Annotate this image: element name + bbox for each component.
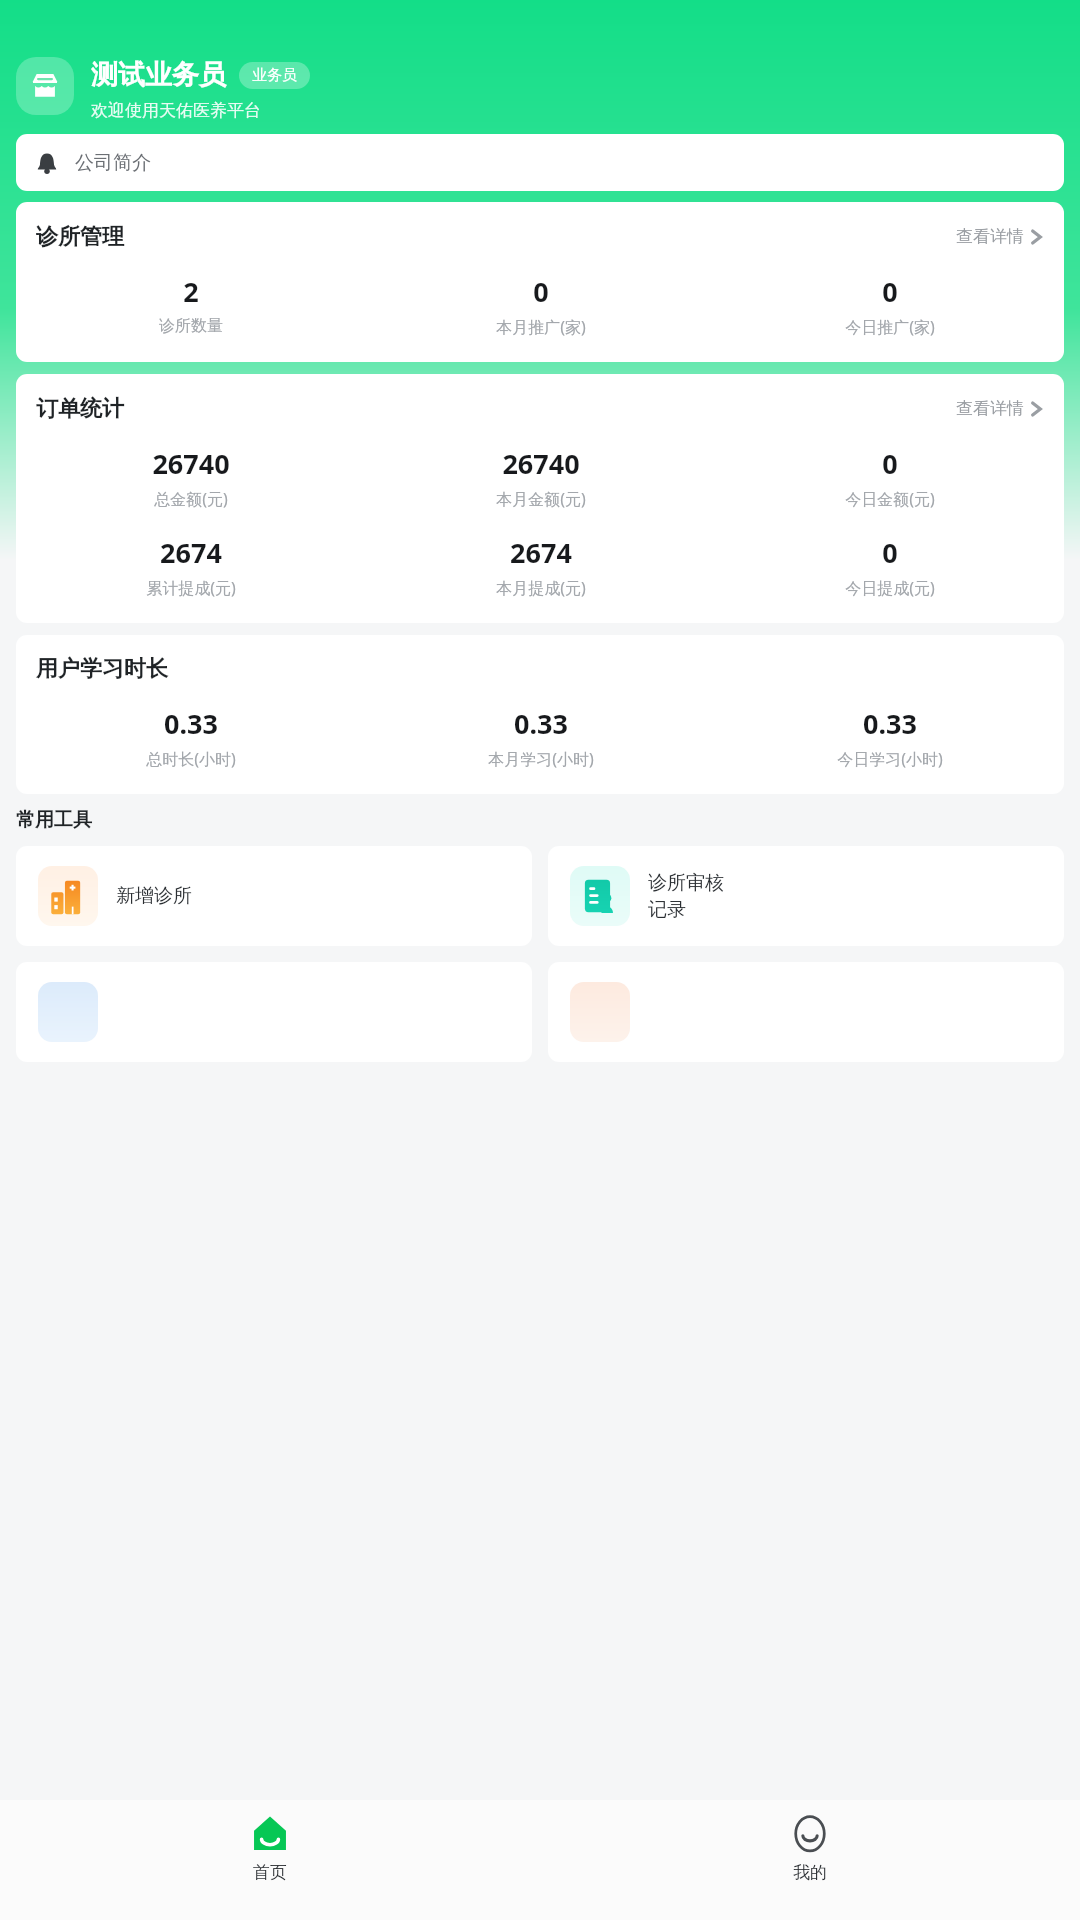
staticText: 0: [882, 445, 898, 482]
staticText: 查看详情: [956, 398, 1024, 419]
staticText: 累计提成(元): [146, 577, 236, 599]
staticText: 2674: [510, 534, 572, 571]
staticText: 查看详情: [956, 226, 1024, 247]
staticText: 常用工具: [16, 808, 92, 832]
button[interactable]: 首页: [0, 1800, 540, 1920]
staticText: 0: [882, 534, 898, 571]
staticText: 0.33: [863, 705, 917, 742]
staticText: 欢迎使用天佑医养平台: [91, 100, 261, 121]
staticText: 测试业务员: [91, 58, 226, 92]
button[interactable]: 新增诊所: [16, 846, 532, 946]
staticText: 诊所数量: [159, 316, 223, 336]
staticText: 0.33: [514, 705, 568, 742]
staticText: 2674: [160, 534, 222, 571]
button[interactable]: 公司简介: [16, 134, 1064, 191]
staticText: 0.33: [164, 705, 218, 742]
staticText: 总金额(元): [154, 488, 228, 510]
staticText: 0: [533, 273, 549, 310]
button[interactable]: 诊所审核 记录: [548, 846, 1064, 946]
staticText: 公司简介: [75, 151, 151, 175]
button[interactable]: 查看详情: [952, 222, 1046, 251]
staticText: 我的: [793, 1862, 827, 1883]
button[interactable]: 查看详情: [952, 394, 1046, 423]
staticText: 总时长(小时): [146, 748, 236, 770]
staticText: 26740: [152, 445, 230, 482]
staticText: 订单统计: [36, 395, 124, 423]
staticText: 首页: [253, 1862, 287, 1883]
staticText: 本月提成(元): [496, 577, 586, 599]
staticText: 业务员: [252, 66, 297, 85]
staticText: 今日金额(元): [845, 488, 935, 510]
staticText: 诊所审核 记录: [648, 871, 724, 922]
button[interactable]: [16, 962, 532, 1062]
staticText: 本月金额(元): [496, 488, 586, 510]
staticText: 本月学习(小时): [488, 748, 594, 770]
staticText: 今日学习(小时): [837, 748, 943, 770]
staticText: 今日推广(家): [845, 316, 935, 338]
staticText: 0: [882, 273, 898, 310]
staticText: 用户学习时长: [36, 655, 168, 683]
staticText: 新增诊所: [116, 884, 192, 908]
staticText: 今日提成(元): [845, 577, 935, 599]
staticText: 本月推广(家): [496, 316, 586, 338]
button[interactable]: [548, 962, 1064, 1062]
staticText: 诊所管理: [36, 223, 124, 251]
staticText: 26740: [502, 445, 580, 482]
button[interactable]: 我的: [540, 1800, 1080, 1920]
staticText: 2: [183, 273, 199, 310]
